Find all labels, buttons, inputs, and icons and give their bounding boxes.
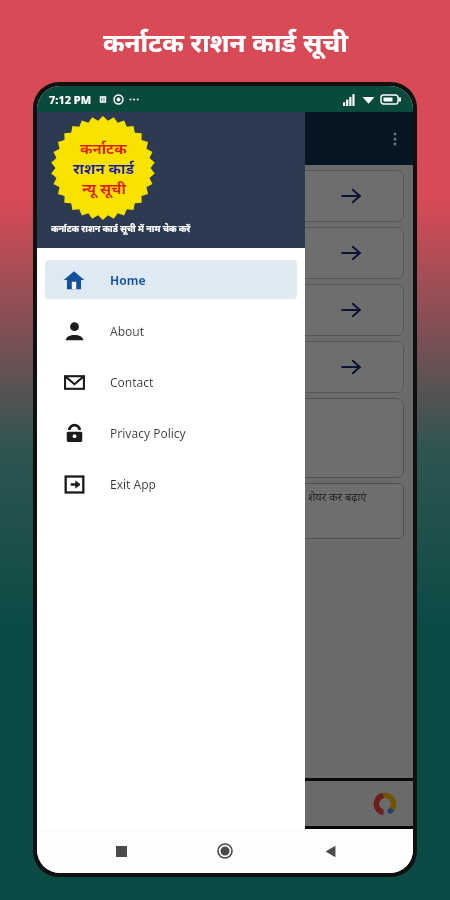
staticText: न्यू सूची: [82, 178, 126, 198]
staticText: Privacy Policy: [110, 425, 186, 441]
staticText: Exit App: [110, 476, 156, 492]
button[interactable]: Home: [45, 260, 297, 299]
button[interactable]: Home: [204, 830, 246, 872]
staticText: कर्नाटक: [80, 138, 127, 158]
staticText: कर्नाटक राशन कार्ड सूची: [103, 24, 348, 59]
button[interactable]: Back: [309, 830, 351, 872]
button[interactable]: Recents: [100, 830, 142, 872]
button[interactable]: More options: [377, 121, 413, 157]
button[interactable]: [46, 227, 404, 279]
button[interactable]: [46, 341, 404, 393]
button[interactable]: [46, 170, 404, 222]
button[interactable]: About: [45, 311, 297, 350]
button[interactable]: Share App: [46, 398, 404, 478]
staticText: About: [110, 323, 145, 339]
button[interactable]: [46, 284, 404, 336]
staticText: ऊपर दिए गए शेयर बटन दबाकर इस एप को अपने …: [55, 489, 367, 504]
staticText: राशन कार्ड: [73, 158, 134, 178]
button[interactable]: Exit App: [45, 464, 297, 503]
staticText: कर्नाटक राशन कार्ड सूची में नाम चेक करें: [51, 222, 191, 234]
button[interactable]: Privacy Policy: [45, 413, 297, 452]
staticText: Contact: [110, 374, 154, 390]
button[interactable]: Contact: [45, 362, 297, 401]
staticText: Home: [110, 272, 146, 288]
staticText: 7:12 PM: [49, 92, 92, 107]
